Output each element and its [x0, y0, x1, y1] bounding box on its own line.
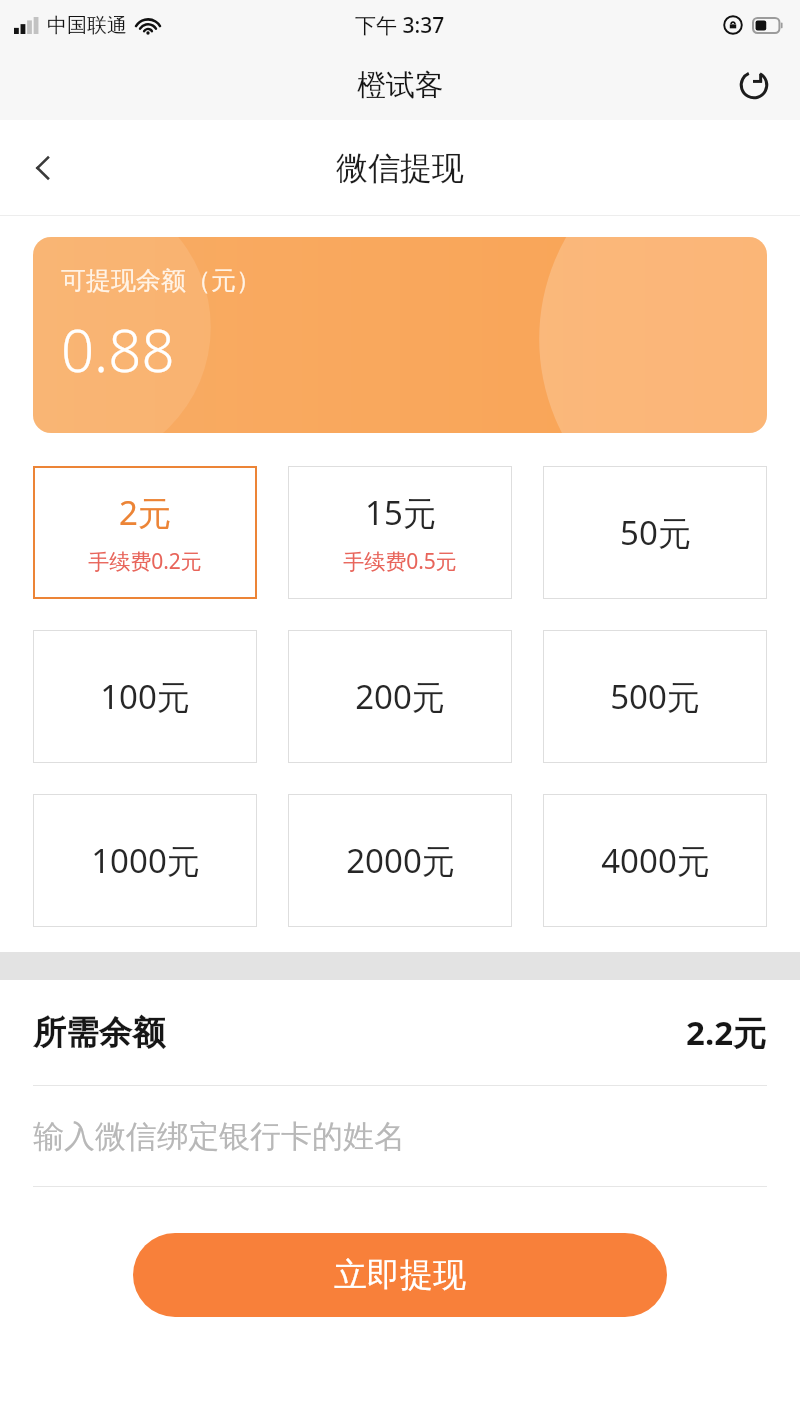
staticText: 立即提现 — [334, 1254, 466, 1296]
staticText: 200元 — [355, 674, 445, 719]
staticText: 橙试客 — [357, 67, 444, 104]
staticText: 手续费0.2元 — [88, 547, 202, 576]
staticText: 2元 — [119, 490, 171, 535]
button[interactable]: 2000元 — [288, 794, 512, 927]
staticText: 手续费0.5元 — [343, 547, 457, 576]
staticText: 500元 — [610, 674, 700, 719]
staticText: 15元 — [365, 490, 436, 535]
button[interactable]: 输入微信绑定银行卡的姓名 — [33, 1086, 767, 1186]
button[interactable]: Refresh — [728, 59, 780, 111]
button[interactable]: 200元 — [288, 630, 512, 763]
staticText: 0.88 — [61, 310, 175, 389]
staticText: 1000元 — [91, 838, 200, 883]
button[interactable]: 2元 — [33, 466, 257, 599]
button[interactable]: 15元 — [288, 466, 512, 599]
staticText: 2000元 — [346, 838, 455, 883]
button[interactable]: 4000元 — [543, 794, 767, 927]
button[interactable]: 500元 — [543, 630, 767, 763]
staticText: 2.2元 — [686, 1010, 767, 1055]
staticText: 100元 — [100, 674, 190, 719]
staticText: 所需余额 — [33, 1012, 165, 1054]
button[interactable]: 50元 — [543, 466, 767, 599]
button[interactable]: 1000元 — [33, 794, 257, 927]
button[interactable]: 立即提现 — [133, 1233, 667, 1317]
button[interactable]: 100元 — [33, 630, 257, 763]
staticText: 可提现余额（元） — [61, 265, 261, 296]
staticText: 微信提现 — [336, 148, 464, 188]
staticText: 下午 3:37 — [355, 11, 445, 40]
button[interactable]: Back — [14, 139, 72, 197]
staticText: 中国联通 — [47, 13, 127, 38]
button[interactable]: 可提现余额（元） — [33, 237, 767, 433]
staticText: 输入微信绑定银行卡的姓名 — [33, 1117, 405, 1156]
staticText: 4000元 — [601, 838, 710, 883]
staticText: 50元 — [620, 510, 691, 555]
